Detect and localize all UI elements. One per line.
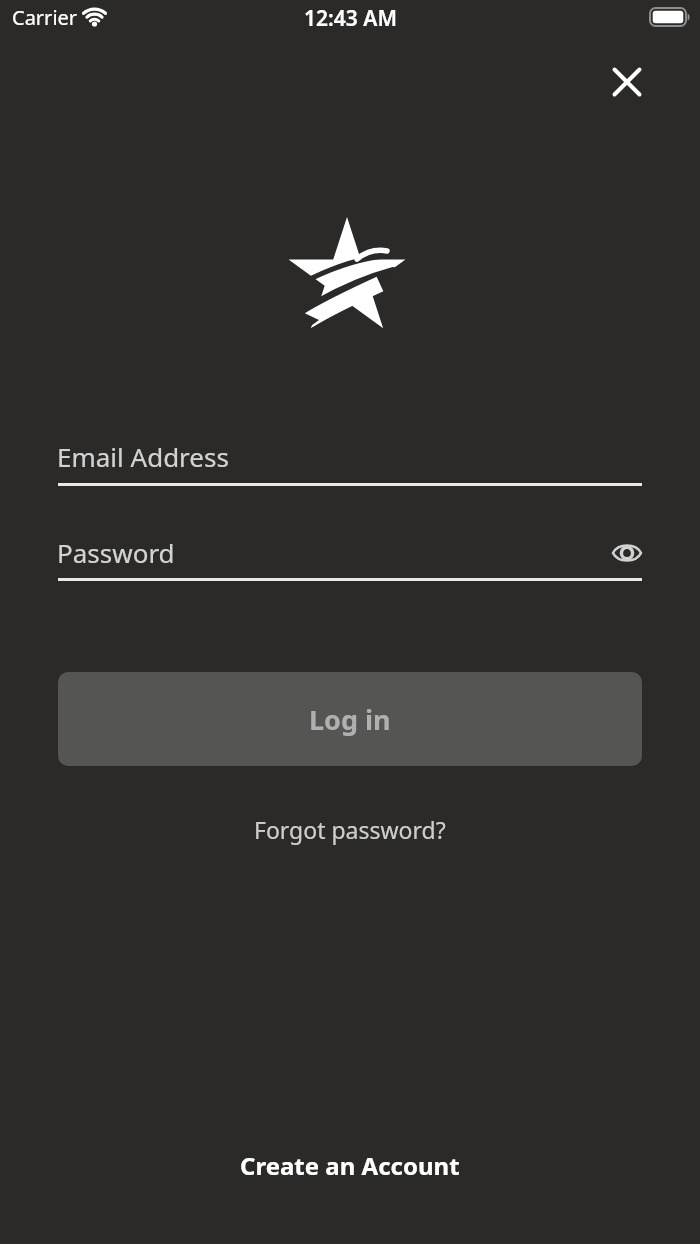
staticText: Log in <box>309 701 391 738</box>
staticText: Password <box>57 535 175 570</box>
staticText: Create an Account <box>240 1149 460 1182</box>
staticText: Carrier <box>12 4 78 31</box>
button[interactable]: Log in <box>58 672 642 766</box>
button[interactable] <box>604 531 650 575</box>
button[interactable]: Forgot password? <box>246 810 454 849</box>
staticText: Email Address <box>57 439 229 474</box>
staticText: Forgot password? <box>254 814 446 845</box>
button[interactable]: Create an Account <box>230 1143 470 1188</box>
staticText: 12:43 AM <box>304 4 397 33</box>
button[interactable] <box>599 54 655 110</box>
